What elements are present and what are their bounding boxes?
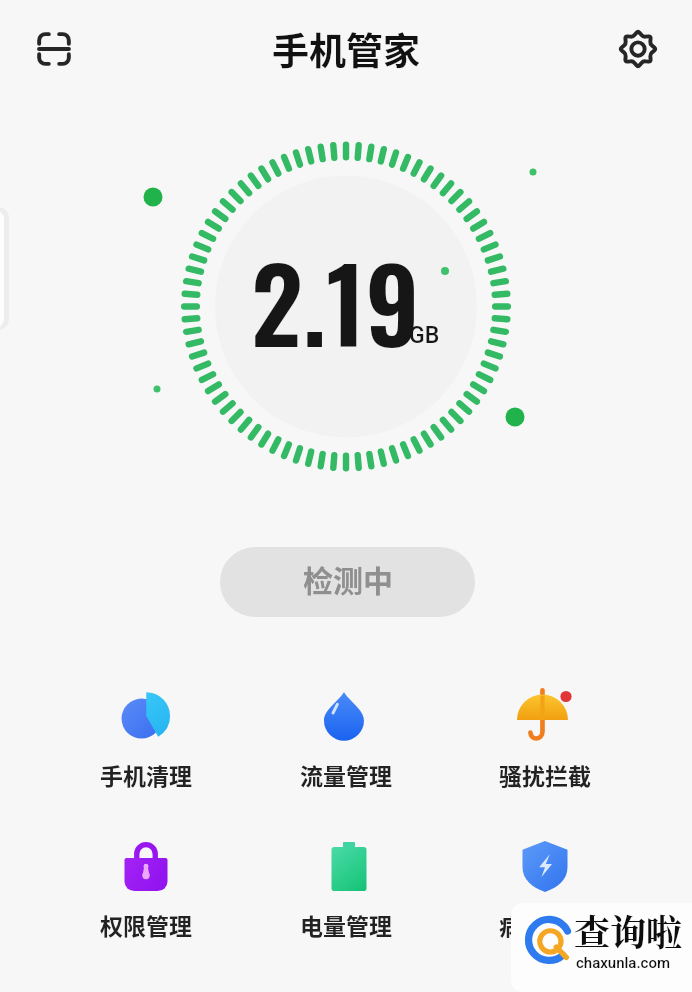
staticText: 骚扰拦截 [499, 758, 591, 791]
button[interactable]: 权限管理 [74, 823, 218, 945]
button[interactable]: 流量管理 [274, 673, 418, 795]
button[interactable]: 电量管理 [274, 823, 418, 945]
staticText: 病毒查杀 [499, 908, 591, 941]
button[interactable]: Settings [615, 26, 661, 72]
button[interactable]: 病毒查杀 [473, 823, 617, 945]
staticText: GB [409, 322, 440, 349]
staticText: 权限管理 [100, 908, 192, 941]
button[interactable]: 骚扰拦截 [473, 673, 617, 795]
button[interactable]: Scan [31, 26, 77, 72]
staticText: 电量管理 [300, 908, 392, 941]
staticText: 检测中 [303, 557, 393, 600]
staticText: chaxunla.com [576, 954, 670, 972]
staticText: 手机管家 [0, 22, 692, 76]
staticText: 查询啦 [574, 905, 683, 957]
staticText: 2.19 [251, 225, 420, 376]
staticText: 流量管理 [300, 758, 392, 791]
staticText: 手机清理 [100, 758, 192, 791]
button[interactable]: 检测中 [220, 547, 475, 617]
button[interactable]: 手机清理 [74, 673, 218, 795]
